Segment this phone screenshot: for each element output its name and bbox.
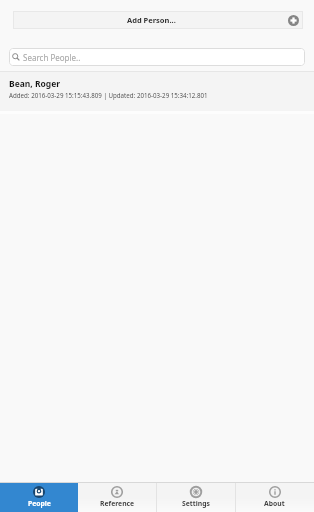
button[interactable]: Add Person bbox=[288, 15, 299, 26]
staticText: People bbox=[28, 499, 51, 508]
staticText: Settings bbox=[182, 499, 210, 508]
button[interactable]: Add Person... bbox=[13, 11, 303, 29]
button[interactable]: Settings bbox=[156, 483, 235, 512]
staticText: Search People.. bbox=[23, 52, 81, 63]
button[interactable]: About bbox=[235, 483, 314, 512]
staticText: About bbox=[264, 499, 285, 508]
button[interactable]: Reference bbox=[78, 483, 156, 512]
staticText: Bean, Roger bbox=[9, 78, 61, 90]
staticText: Add Person... bbox=[127, 15, 176, 25]
staticText: Reference bbox=[100, 499, 135, 508]
staticText: Added: 2016-03-29 15:15:43.809 | Updated… bbox=[9, 91, 208, 99]
button[interactable]: Search People.. bbox=[9, 48, 305, 66]
button[interactable]: People bbox=[0, 483, 78, 512]
button[interactable]: Bean, Roger bbox=[0, 72, 314, 111]
